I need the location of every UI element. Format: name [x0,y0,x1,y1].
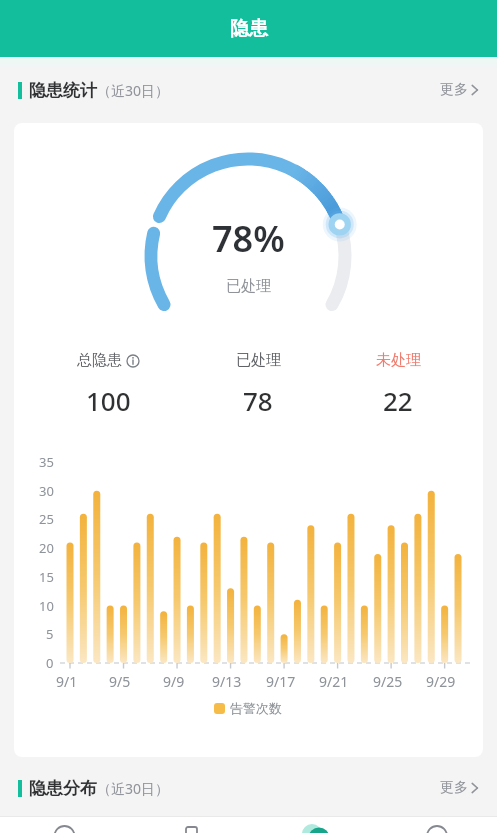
button[interactable]: 更多 [440,81,479,99]
staticText: 15 [39,568,54,586]
button[interactable] [249,816,373,833]
staticText: 78% [212,214,285,263]
staticText: 更多 [440,779,468,797]
staticText: （近30日） [97,81,170,100]
staticText: 9/13 [212,672,242,690]
staticText: 未处理 [376,351,421,370]
button[interactable] [0,816,125,833]
staticText: 9/25 [373,672,403,690]
staticText: 0 [46,654,54,672]
staticText: 78 [243,383,273,418]
staticText: 35 [39,453,54,471]
staticText: 隐患分布 [29,778,97,799]
button[interactable]: 总隐患 [77,351,140,370]
staticText: 总隐患 [77,351,122,370]
staticText: 已处理 [226,277,271,296]
staticText: 5 [46,625,54,643]
staticText: 20 [39,539,54,557]
staticText: 25 [39,510,54,528]
staticText: 100 [86,383,131,418]
staticText: 9/5 [109,672,131,690]
staticText: 9/1 [56,672,78,690]
staticText: 10 [39,597,54,615]
button[interactable] [373,816,497,833]
staticText: 30 [39,482,54,500]
staticText: 告警次数 [230,700,282,716]
staticText: 隐患 [230,17,268,41]
staticText: 9/21 [319,672,349,690]
staticText: 9/29 [426,672,456,690]
staticText: 9/17 [266,672,296,690]
staticText: 已处理 [236,351,281,370]
staticText: 隐患统计 [29,80,97,101]
button[interactable] [125,816,249,833]
staticText: 更多 [440,81,468,99]
staticText: 9/9 [163,672,185,690]
button[interactable]: 更多 [440,779,479,797]
staticText: （近30日） [97,779,170,798]
staticText: 22 [383,383,413,418]
